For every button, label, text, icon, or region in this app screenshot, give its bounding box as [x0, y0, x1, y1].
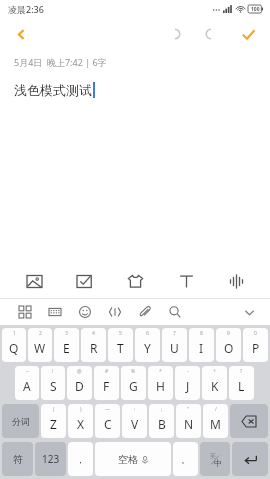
- button[interactable]: %: [121, 366, 146, 400]
- staticText: 分词: [12, 416, 30, 427]
- button[interactable]: Checklist: [67, 264, 101, 298]
- staticText: 5: [119, 330, 122, 337]
- button[interactable]: ): [68, 404, 93, 438]
- button[interactable]: 3: [54, 328, 79, 362]
- button[interactable]: Menu: [10, 299, 40, 325]
- staticText: ): [80, 406, 82, 413]
- staticText: 符: [13, 453, 23, 466]
- button[interactable]: Back: [4, 18, 38, 50]
- staticText: —: [105, 406, 111, 413]
- staticText: N: [184, 416, 194, 432]
- staticText: ~: [26, 368, 29, 375]
- staticText: K: [211, 378, 219, 394]
- button[interactable]: Insert image: [17, 264, 51, 298]
- button[interactable]: 。: [173, 442, 198, 476]
- button[interactable]: Backspace: [230, 404, 268, 438]
- button[interactable]: ;: [149, 404, 174, 438]
- button[interactable]: (: [41, 404, 66, 438]
- button[interactable]: 0: [243, 328, 268, 362]
- button[interactable]: 6: [135, 328, 160, 362]
- staticText: ;: [161, 406, 163, 413]
- button[interactable]: #: [94, 366, 119, 400]
- staticText: F: [103, 378, 110, 394]
- staticText: T: [117, 340, 124, 356]
- staticText: Y: [144, 340, 151, 356]
- button[interactable]: :: [122, 404, 147, 438]
- button[interactable]: 2: [28, 328, 52, 362]
- button[interactable]: 分词: [2, 404, 39, 438]
- staticText: S: [50, 378, 57, 394]
- staticText: G: [129, 378, 138, 394]
- button[interactable]: /: [203, 404, 228, 438]
- button[interactable]: 5: [108, 328, 133, 362]
- staticText: B: [158, 416, 166, 432]
- staticText: H: [156, 378, 165, 394]
- staticText: Z: [50, 416, 57, 432]
- button[interactable]: @: [67, 366, 92, 400]
- button[interactable]: Edit text: [100, 299, 130, 325]
- button[interactable]: ?: [229, 366, 254, 400]
- staticText: A: [23, 378, 31, 394]
- staticText: 中: [214, 458, 222, 468]
- staticText: 8: [200, 330, 203, 337]
- staticText: C: [104, 416, 112, 432]
- button[interactable]: 123: [35, 442, 66, 476]
- staticText: 7: [173, 330, 176, 337]
- staticText: ，: [76, 454, 85, 465]
- button[interactable]: 4: [81, 328, 106, 362]
- staticText: 浅色模式测试: [14, 82, 92, 98]
- staticText: 6: [146, 330, 149, 337]
- staticText: %: [131, 368, 136, 375]
- button[interactable]: 7: [162, 328, 187, 362]
- button[interactable]: -: [175, 366, 200, 400]
- button[interactable]: Emoji: [70, 299, 100, 325]
- staticText: 空格: [118, 453, 138, 466]
- staticText: 英: [210, 452, 216, 460]
- staticText: U: [170, 340, 179, 356]
- staticText: L: [238, 378, 245, 394]
- button[interactable]: 符: [2, 442, 33, 476]
- button[interactable]: Redo: [198, 21, 224, 47]
- button[interactable]: 1: [2, 328, 26, 362]
- button[interactable]: ，: [68, 442, 93, 476]
- button[interactable]: Search: [160, 299, 190, 325]
- button[interactable]: 9: [216, 328, 241, 362]
- button[interactable]: Hide keyboard: [236, 299, 262, 325]
- staticText: 0: [254, 330, 257, 337]
- staticText: ?: [240, 368, 243, 375]
- button[interactable]: Keyboard: [40, 299, 70, 325]
- staticText: 4: [92, 330, 95, 337]
- button[interactable]: Attach: [130, 299, 160, 325]
- staticText: D: [75, 378, 84, 394]
- staticText: I: [199, 340, 204, 356]
- button[interactable]: Text format: [169, 264, 203, 298]
- button[interactable]: ": [176, 404, 201, 438]
- button[interactable]: 英: [200, 442, 230, 476]
- button[interactable]: 空格: [95, 442, 171, 476]
- button[interactable]: —: [95, 404, 120, 438]
- staticText: 凌晨2:36: [8, 3, 44, 15]
- staticText: Q: [9, 340, 19, 356]
- button[interactable]: Done: [234, 20, 262, 48]
- button[interactable]: Undo: [162, 21, 188, 47]
- button[interactable]: Voice: [219, 264, 253, 298]
- staticText: P: [252, 340, 260, 356]
- button[interactable]: *: [148, 366, 173, 400]
- staticText: 100: [251, 6, 260, 13]
- staticText: J: [186, 378, 190, 394]
- button[interactable]: +: [202, 366, 227, 400]
- button[interactable]: ~: [15, 366, 39, 400]
- staticText: W: [34, 340, 46, 356]
- staticText: X: [77, 416, 85, 432]
- staticText: /: [215, 406, 217, 413]
- button[interactable]: !: [41, 366, 65, 400]
- staticText: 9: [227, 330, 230, 337]
- staticText: @: [77, 368, 82, 375]
- staticText: 5月4日 晚上7:42 | 6字: [14, 56, 107, 68]
- staticText: O: [224, 340, 234, 356]
- button[interactable]: 8: [189, 328, 214, 362]
- staticText: 2: [39, 330, 42, 337]
- staticText: ": [187, 406, 190, 413]
- button[interactable]: Enter: [232, 442, 268, 476]
- button[interactable]: Style: [118, 264, 152, 298]
